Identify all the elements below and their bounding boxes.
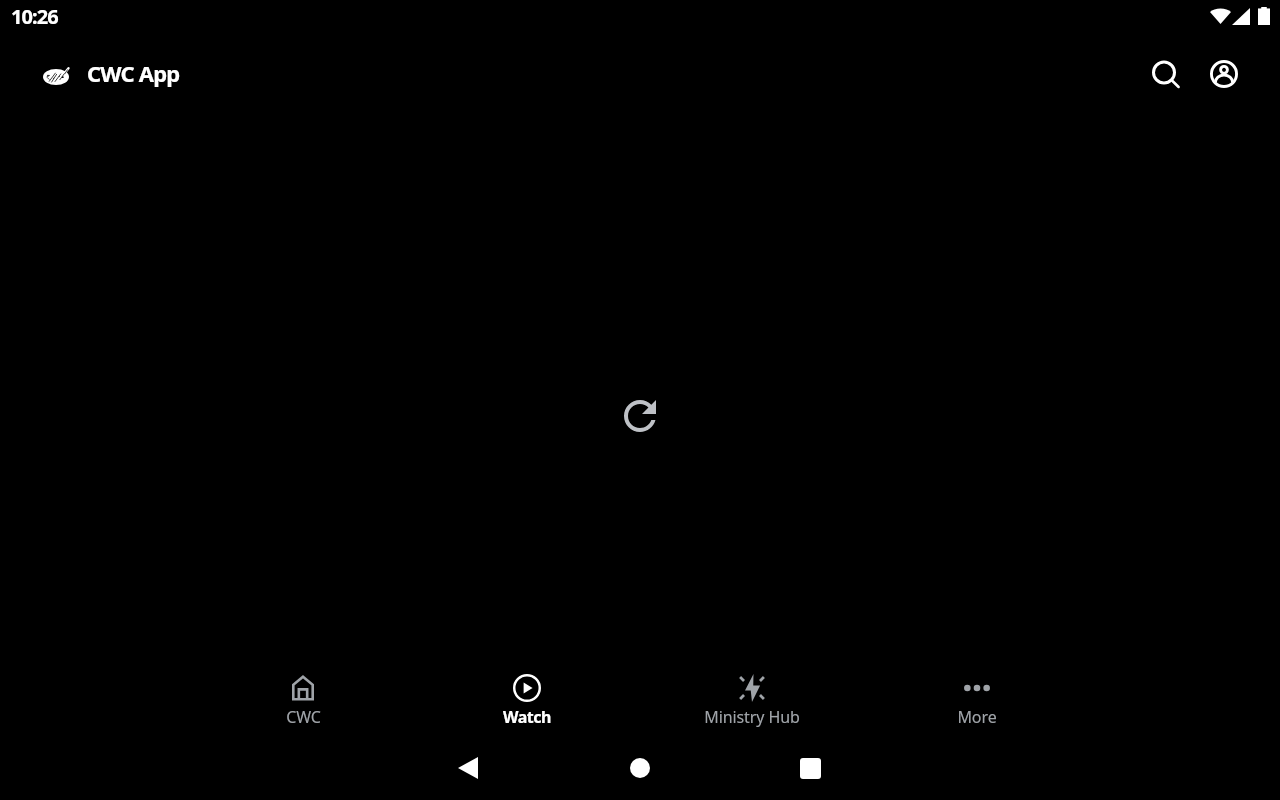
staticText: 10:26 <box>11 3 58 30</box>
staticText: CWC <box>286 706 321 728</box>
button[interactable]: Watch <box>447 660 607 732</box>
button[interactable]: Back <box>444 744 492 792</box>
button[interactable]: Refresh <box>608 384 672 448</box>
button[interactable]: CWC <box>223 660 383 732</box>
staticText: Watch <box>503 706 551 728</box>
button[interactable]: More <box>897 660 1057 732</box>
staticText: Ministry Hub <box>704 706 800 728</box>
button[interactable]: Home <box>616 744 664 792</box>
button[interactable]: CWC App <box>37 51 186 97</box>
button[interactable]: Ministry Hub <box>672 660 832 732</box>
staticText: More <box>957 706 997 728</box>
button[interactable]: Recent apps <box>786 744 834 792</box>
button[interactable]: Search <box>1137 45 1195 103</box>
staticText: CWC App <box>87 58 180 88</box>
button[interactable]: Account <box>1195 45 1253 103</box>
